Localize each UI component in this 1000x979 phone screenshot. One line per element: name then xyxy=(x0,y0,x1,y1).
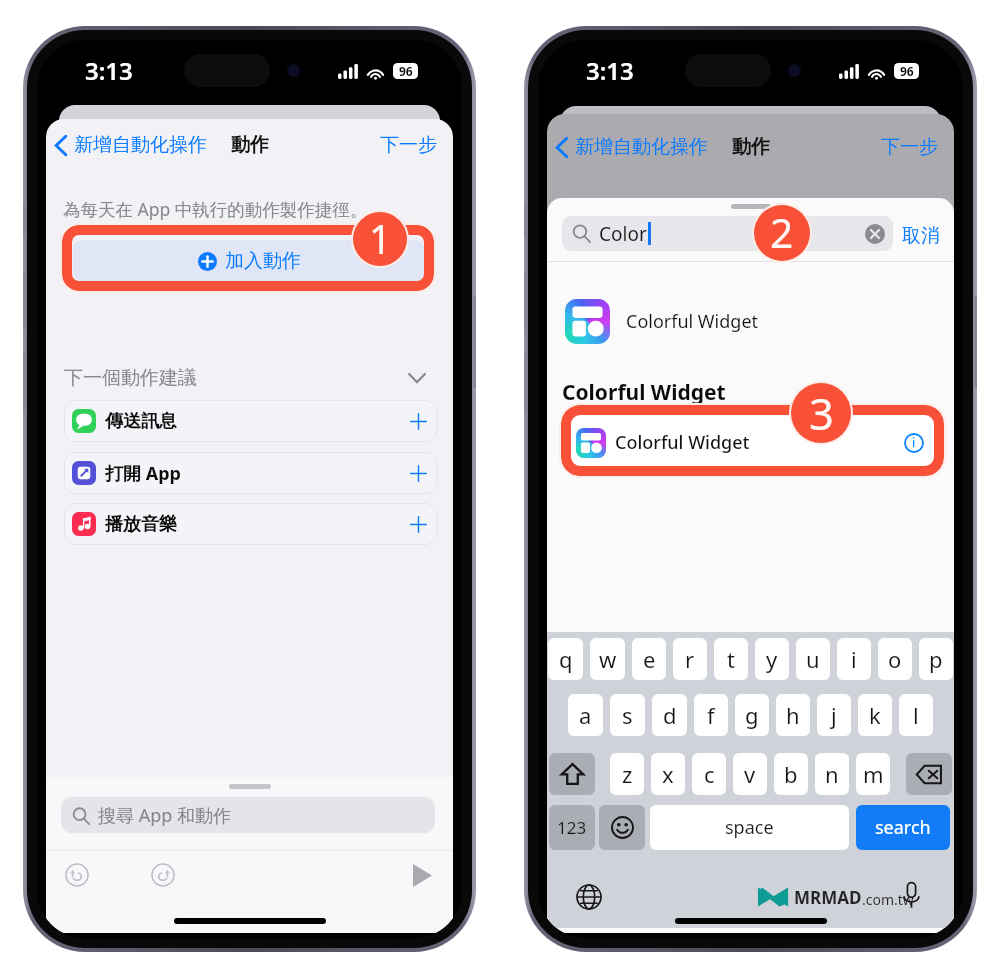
staticText: z xyxy=(622,759,633,789)
button[interactable]: search xyxy=(856,805,950,850)
button[interactable]: Colorful Widget xyxy=(567,416,938,469)
staticText: r xyxy=(685,644,695,674)
button[interactable]: Backspace xyxy=(906,753,952,795)
button[interactable]: 傳送訊息 xyxy=(64,400,437,442)
button[interactable]: m xyxy=(856,753,890,795)
button[interactable]: Undo xyxy=(62,860,92,890)
staticText: 新增自動化操作 xyxy=(74,133,207,157)
staticText: s xyxy=(622,700,633,730)
staticText: t xyxy=(727,644,735,674)
button[interactable]: 播放音樂 xyxy=(64,503,437,545)
staticText: 下一個動作建議 xyxy=(64,366,197,390)
staticText: f xyxy=(707,700,715,730)
button[interactable]: r xyxy=(673,638,707,680)
staticText: w xyxy=(599,644,617,674)
button[interactable]: Shift xyxy=(549,753,595,795)
button[interactable]: h xyxy=(776,694,810,736)
staticText: 2 xyxy=(770,205,794,260)
button[interactable]: Emoji xyxy=(599,805,645,850)
button[interactable]: 新增自動化操作 xyxy=(50,127,212,163)
button[interactable]: Clear text xyxy=(865,224,885,244)
staticText: v xyxy=(744,759,756,789)
button[interactable]: e xyxy=(632,638,666,680)
button[interactable]: c xyxy=(692,753,726,795)
staticText: Color xyxy=(599,221,647,247)
button[interactable]: w xyxy=(590,638,625,680)
staticText: p xyxy=(929,644,943,674)
button[interactable]: space xyxy=(650,805,849,850)
staticText: k xyxy=(869,700,881,730)
staticText: space xyxy=(725,815,774,840)
staticText: search xyxy=(875,815,931,840)
button[interactable]: 加入動作 xyxy=(73,240,425,281)
button[interactable]: 取消 xyxy=(899,221,943,251)
button[interactable]: o xyxy=(878,638,912,680)
button[interactable]: Run xyxy=(410,861,435,890)
staticText: a xyxy=(579,700,592,730)
button[interactable]: l xyxy=(899,694,933,736)
staticText: 傳送訊息 xyxy=(105,410,177,433)
button[interactable]: Color xyxy=(562,216,893,251)
staticText: 動作 xyxy=(231,133,269,157)
button[interactable]: b xyxy=(774,753,808,795)
button[interactable]: g xyxy=(735,694,769,736)
staticText: Colorful Widget xyxy=(615,430,750,455)
staticText: m xyxy=(863,759,884,789)
button[interactable]: u xyxy=(796,638,830,680)
button[interactable]: v xyxy=(733,753,767,795)
staticText: 取消 xyxy=(902,224,940,248)
staticText: 96 xyxy=(399,63,413,79)
button[interactable]: j xyxy=(817,694,851,736)
staticText: 1 xyxy=(369,212,392,265)
staticText: Colorful Widget xyxy=(562,378,726,407)
staticText: b xyxy=(784,759,798,789)
staticText: 3 xyxy=(809,383,834,442)
button[interactable]: Redo xyxy=(148,860,178,890)
button[interactable]: 下一步 xyxy=(375,128,442,162)
staticText: e xyxy=(643,644,656,674)
button[interactable]: i xyxy=(837,638,871,680)
button[interactable]: z xyxy=(610,753,644,795)
staticText: MRMAD xyxy=(794,886,862,909)
staticText: 96 xyxy=(900,63,914,79)
staticText: 下一步 xyxy=(380,133,437,157)
button[interactable]: q xyxy=(548,638,583,680)
button[interactable]: f xyxy=(694,694,728,736)
staticText: l xyxy=(913,700,919,730)
button[interactable]: a xyxy=(568,694,603,736)
button[interactable]: p xyxy=(919,638,953,680)
button[interactable]: x xyxy=(651,753,685,795)
button[interactable]: Change keyboard language xyxy=(574,882,604,912)
button[interactable]: 下一步 xyxy=(876,130,943,164)
button[interactable]: s xyxy=(610,694,645,736)
staticText: 為每天在 App 中執行的動作製作捷徑。 xyxy=(63,197,368,221)
button[interactable]: Numbers xyxy=(549,805,595,850)
button[interactable]: d xyxy=(652,694,687,736)
staticText: 加入動作 xyxy=(225,249,301,273)
button[interactable]: y xyxy=(755,638,789,680)
staticText: c xyxy=(704,759,715,789)
button[interactable]: 下一個動作建議 xyxy=(64,364,426,392)
staticText: x xyxy=(662,759,674,789)
staticText: 播放音樂 xyxy=(105,513,177,536)
staticText: y xyxy=(766,644,778,674)
button[interactable]: n xyxy=(815,753,849,795)
staticText: q xyxy=(559,644,573,674)
staticText: i xyxy=(912,434,916,450)
staticText: i xyxy=(851,644,857,674)
button[interactable]: Colorful Widget xyxy=(565,296,905,347)
button[interactable]: t xyxy=(714,638,748,680)
staticText: 動作 xyxy=(732,135,770,159)
staticText: j xyxy=(831,700,837,730)
staticText: h xyxy=(786,700,800,730)
button[interactable]: 打開 App xyxy=(64,452,437,494)
staticText: g xyxy=(745,700,759,730)
staticText: 搜尋 App 和動作 xyxy=(98,803,232,828)
staticText: 下一步 xyxy=(881,135,938,159)
button[interactable]: 搜尋 App 和動作 xyxy=(61,797,435,833)
staticText: 打開 App xyxy=(105,461,181,486)
button[interactable]: Dictation xyxy=(899,877,923,913)
button[interactable]: k xyxy=(858,694,892,736)
staticText: n xyxy=(825,759,839,789)
button[interactable]: 新增自動化操作 xyxy=(551,129,713,165)
